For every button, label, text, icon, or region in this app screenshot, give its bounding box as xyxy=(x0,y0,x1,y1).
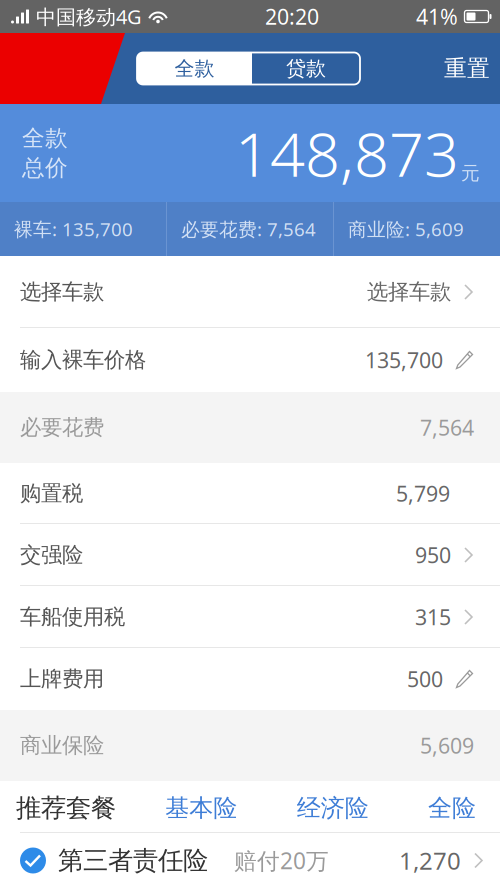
staticText: 全险 xyxy=(428,793,476,823)
button[interactable]: 重置 xyxy=(430,33,493,104)
staticText: 选择车款 xyxy=(20,279,104,305)
staticText: 推荐套餐 xyxy=(16,792,116,823)
button[interactable]: 经济险 xyxy=(287,783,379,833)
staticText: 第三者责任险 xyxy=(58,845,208,876)
staticText: 135,700 xyxy=(365,346,443,374)
staticText: 商业保险 xyxy=(20,732,104,759)
staticText: 输入裸车价格 xyxy=(20,347,146,373)
button[interactable]: 购置税 xyxy=(0,463,500,524)
staticText: 必要花费: 7,564 xyxy=(181,217,316,241)
staticText: 选择车款 xyxy=(367,279,451,305)
staticText: 必要花费 xyxy=(20,414,104,441)
staticText: 315 xyxy=(415,603,451,631)
staticText: 20:20 xyxy=(265,2,319,31)
button[interactable]: 全险 xyxy=(418,783,500,833)
staticText: 元 xyxy=(461,162,480,185)
button[interactable]: 全款 xyxy=(137,52,252,84)
staticText: 购置税 xyxy=(20,480,83,507)
staticText: 贷款 xyxy=(286,56,326,81)
staticText: 赔付20万 xyxy=(234,845,329,875)
staticText: 重置 xyxy=(444,55,490,82)
staticText: 全款 xyxy=(22,124,68,152)
staticText: 1,270 xyxy=(399,845,461,876)
staticText: 基本险 xyxy=(165,793,237,823)
staticText: 全款 xyxy=(174,56,214,81)
staticText: 5,609 xyxy=(420,731,474,760)
staticText: 5,799 xyxy=(396,479,450,508)
button[interactable]: 选择车款 xyxy=(0,256,500,328)
button[interactable]: 第三者责任险 xyxy=(0,833,500,888)
staticText: 总价 xyxy=(22,154,68,182)
staticText: 上牌费用 xyxy=(20,666,104,692)
staticText: 148,873 xyxy=(235,112,459,194)
staticText: 7,564 xyxy=(420,413,474,442)
button[interactable]: 车船使用税 xyxy=(0,586,500,648)
staticText: 经济险 xyxy=(297,793,369,823)
button[interactable]: 输入裸车价格 xyxy=(0,328,500,392)
staticText: 中国移动4G xyxy=(36,3,142,30)
staticText: 裸车: 135,700 xyxy=(14,217,133,241)
button[interactable]: 交强险 xyxy=(0,524,500,586)
button[interactable]: 贷款 xyxy=(252,52,360,84)
staticText: 商业险: 5,609 xyxy=(348,217,464,241)
button[interactable]: 基本险 xyxy=(155,783,247,833)
staticText: 500 xyxy=(407,665,443,693)
staticText: 950 xyxy=(415,541,451,569)
staticText: 车船使用税 xyxy=(20,604,125,630)
staticText: 41% xyxy=(416,2,458,31)
staticText: 交强险 xyxy=(20,542,83,568)
button[interactable]: 上牌费用 xyxy=(0,648,500,710)
